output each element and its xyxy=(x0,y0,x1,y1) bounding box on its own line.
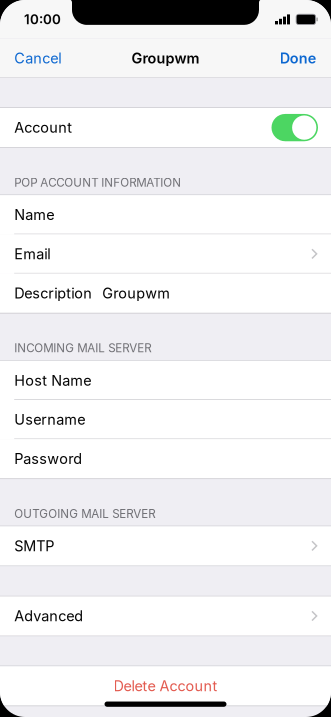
staticText: POP ACCOUNT INFORMATION xyxy=(14,175,181,189)
staticText: Advanced xyxy=(14,607,83,625)
staticText: OUTGOING MAIL SERVER xyxy=(14,507,155,521)
staticText: Done xyxy=(280,49,317,67)
staticText: Name xyxy=(14,206,54,223)
staticText: Groupwm xyxy=(131,49,199,67)
button[interactable]: Description xyxy=(0,274,331,313)
button[interactable]: Cancel xyxy=(0,39,73,78)
button[interactable]: Account xyxy=(0,108,331,147)
staticText: Description xyxy=(14,284,92,302)
staticText: Cancel xyxy=(14,49,61,67)
staticText: Password xyxy=(14,450,82,467)
staticText: Delete Account xyxy=(113,677,217,695)
staticText: 10:00 xyxy=(24,11,61,27)
staticText: Email xyxy=(14,245,50,263)
staticText: Username xyxy=(14,411,85,428)
button[interactable]: Host Name xyxy=(0,361,331,400)
button[interactable]: Username xyxy=(0,400,331,439)
button[interactable]: Password xyxy=(0,439,331,478)
staticText: INCOMING MAIL SERVER xyxy=(14,341,151,355)
button[interactable]: Email xyxy=(0,234,331,274)
button[interactable]: Delete Account xyxy=(0,666,331,705)
staticText: Account xyxy=(14,119,72,136)
staticText: SMTP xyxy=(14,537,54,555)
button[interactable]: Advanced xyxy=(0,596,331,636)
button[interactable]: Name xyxy=(0,195,331,234)
button[interactable]: Done xyxy=(268,39,331,78)
staticText: Host Name xyxy=(14,372,91,389)
button[interactable]: SMTP xyxy=(0,526,331,566)
staticText: Groupwm xyxy=(102,284,170,302)
